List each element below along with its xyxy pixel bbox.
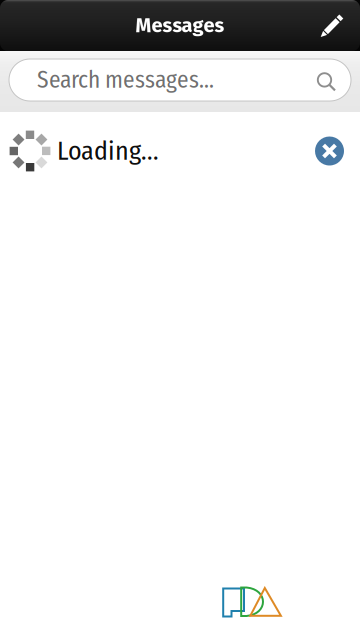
button[interactable]: New message (309, 1, 355, 49)
button[interactable]: Search messages... (0, 51, 360, 112)
staticText: Messages (135, 13, 224, 37)
button[interactable]: Cancel loading (315, 127, 360, 174)
staticText: Loading... (57, 135, 159, 167)
staticText: Search messages... (37, 66, 214, 94)
